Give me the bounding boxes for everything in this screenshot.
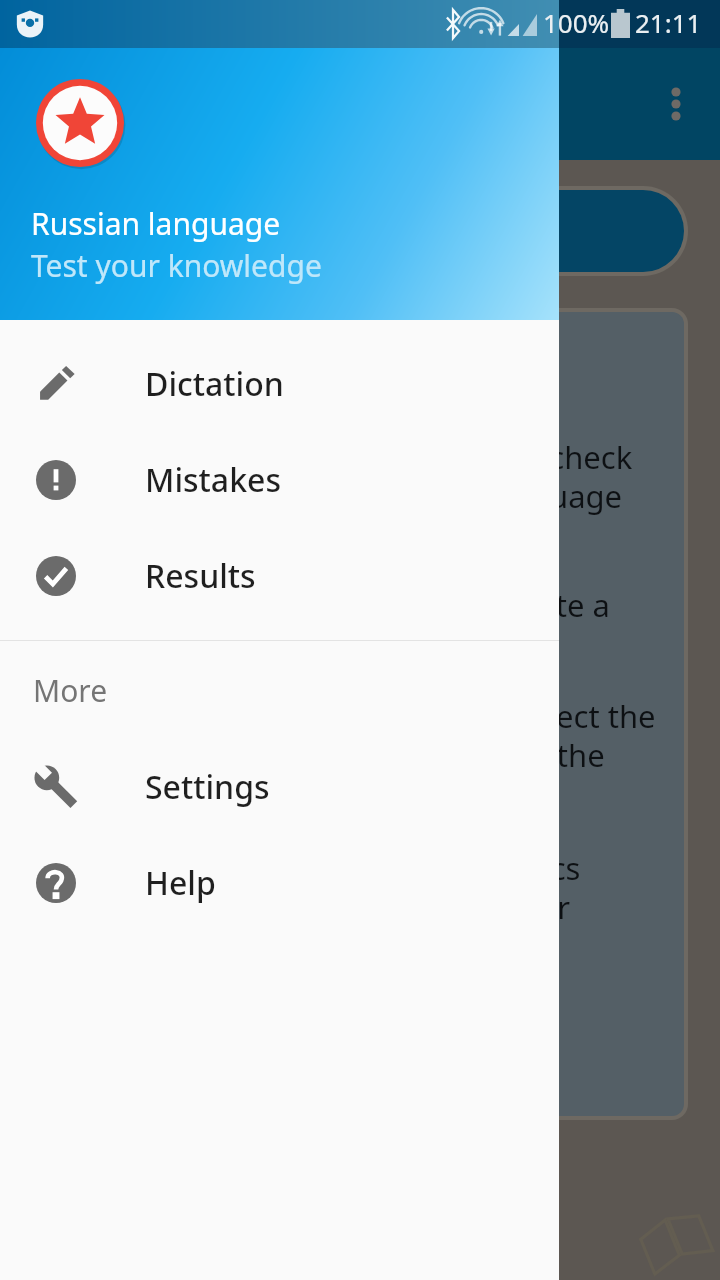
staticText: the knowledge of the Russian language: [48, 475, 623, 517]
button[interactable]: Results: [0, 528, 559, 624]
staticText: Settings: [145, 765, 270, 809]
staticText: errors made during the last test of the: [48, 734, 605, 776]
staticText: Results: [145, 554, 256, 598]
button[interactable]: More options: [648, 76, 704, 132]
staticText: about all the tests made by the user: [48, 886, 571, 928]
staticText: Mistakes: [145, 458, 281, 502]
staticText: This application allows the user to chec…: [48, 436, 633, 478]
staticText: START: [314, 211, 400, 252]
staticText: More: [33, 670, 108, 711]
button[interactable]: Mistakes: [0, 432, 559, 528]
staticText: Russian language: [31, 203, 281, 244]
staticText: Help: [145, 861, 216, 905]
button[interactable]: Help: [0, 835, 559, 931]
button[interactable]: Settings: [0, 739, 559, 835]
staticText: text: [48, 623, 104, 665]
staticText: The mistakes allow the user to correct t…: [48, 695, 656, 737]
staticText: 100%: [543, 5, 610, 40]
button[interactable]: START: [30, 190, 684, 272]
staticText: The dictation allows the user to write a: [48, 584, 610, 626]
staticText: The results show the user a statistics: [48, 847, 581, 889]
staticText: Dictation: [145, 362, 284, 406]
staticText: 21:11: [635, 5, 702, 40]
staticText: Test your knowledge: [31, 245, 322, 286]
button[interactable]: Dictation: [0, 336, 559, 432]
